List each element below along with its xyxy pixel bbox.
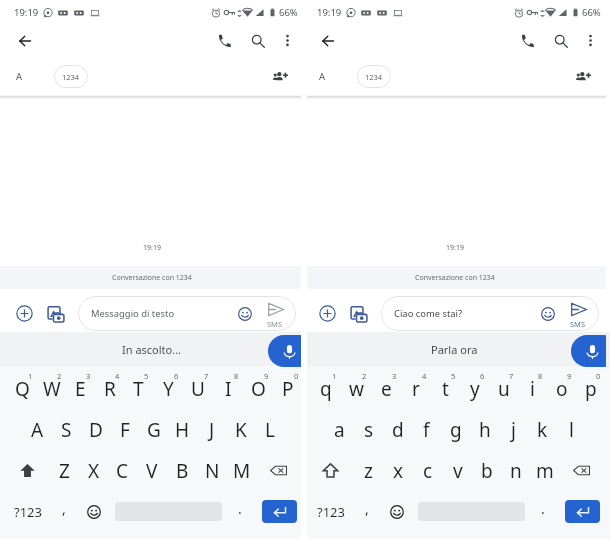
button[interactable]: B <box>167 450 197 491</box>
staticText: 1 <box>28 371 33 381</box>
button[interactable]: Emoji <box>233 302 257 326</box>
button[interactable]: T <box>124 368 153 409</box>
button[interactable]: 1234 <box>357 65 391 88</box>
button[interactable]: a <box>325 409 354 450</box>
button[interactable]: o <box>547 368 576 409</box>
button[interactable]: Enter <box>565 500 600 523</box>
button[interactable]: c <box>413 450 443 491</box>
button[interactable]: Voice input <box>268 335 316 367</box>
button[interactable]: s <box>354 409 383 450</box>
staticText: Messaggio di testo <box>91 307 175 320</box>
button[interactable]: p <box>576 368 605 409</box>
button[interactable]: A <box>22 409 52 450</box>
button[interactable]: Enter <box>262 500 297 523</box>
button[interactable]: Back <box>10 26 39 55</box>
button[interactable]: Q <box>8 368 37 409</box>
button[interactable]: S <box>52 409 81 450</box>
button[interactable]: Call <box>512 26 541 55</box>
button[interactable]: ?123 <box>311 491 351 532</box>
button[interactable]: H <box>168 409 197 450</box>
button[interactable]: w <box>341 368 371 409</box>
staticText: T <box>133 376 144 402</box>
button[interactable]: Search <box>546 26 575 55</box>
button[interactable]: q <box>311 368 341 409</box>
button[interactable]: g <box>441 409 470 450</box>
button[interactable]: f <box>412 409 441 450</box>
button[interactable]: 1234 <box>54 65 88 88</box>
button[interactable]: r <box>401 368 431 409</box>
button[interactable]: J <box>197 409 226 450</box>
button[interactable]: K <box>226 409 255 450</box>
button[interactable]: Add attachment <box>11 300 38 327</box>
button[interactable]: Backspace <box>566 455 597 486</box>
button[interactable]: Add attachment <box>314 300 341 327</box>
button[interactable]: x <box>383 450 413 491</box>
staticText: J <box>209 417 215 443</box>
button[interactable]: Y <box>153 368 183 409</box>
button[interactable]: Emoji <box>536 302 560 326</box>
button[interactable]: Ciao come stai? <box>381 296 599 331</box>
button[interactable]: y <box>460 368 489 409</box>
button[interactable]: d <box>383 409 412 450</box>
button[interactable]: m <box>530 450 559 491</box>
button[interactable]: Search <box>243 26 272 55</box>
staticText: ?123 <box>14 503 42 521</box>
button[interactable]: z <box>353 450 383 491</box>
button[interactable]: k <box>528 409 557 450</box>
button[interactable]: R <box>95 368 124 409</box>
button[interactable]: O <box>243 368 273 409</box>
button[interactable]: W <box>37 368 66 409</box>
button[interactable]: l <box>557 409 586 450</box>
button[interactable]: Voice input <box>571 335 606 367</box>
button[interactable]: Send SMS <box>562 297 594 330</box>
button[interactable]: Send SMS <box>259 297 291 330</box>
button[interactable]: X <box>79 450 108 491</box>
button[interactable]: h <box>470 409 499 450</box>
button[interactable]: e <box>371 368 401 409</box>
button[interactable]: More options <box>273 26 302 55</box>
staticText: 8 <box>234 371 239 381</box>
button[interactable]: , <box>52 491 76 532</box>
button[interactable]: More options <box>576 26 605 55</box>
button[interactable]: Call <box>209 26 238 55</box>
button[interactable]: Shift <box>315 455 346 486</box>
button[interactable]: I <box>213 368 243 409</box>
button[interactable]: , <box>355 491 379 532</box>
button[interactable]: L <box>255 409 284 450</box>
button[interactable]: i <box>518 368 547 409</box>
button[interactable]: C <box>108 450 137 491</box>
button[interactable]: . <box>531 491 555 532</box>
button[interactable]: u <box>489 368 518 409</box>
button[interactable]: Gallery <box>42 300 69 327</box>
button[interactable]: Add people <box>570 64 596 90</box>
button[interactable]: G <box>139 409 168 450</box>
button[interactable]: Add people <box>267 64 293 90</box>
button[interactable]: Emoji <box>81 491 106 532</box>
button[interactable]: Backspace <box>263 455 294 486</box>
button[interactable]: n <box>501 450 530 491</box>
button[interactable]: Emoji <box>384 491 409 532</box>
button[interactable]: M <box>227 450 257 491</box>
staticText: z <box>364 458 373 484</box>
button[interactable]: Z <box>50 450 79 491</box>
button[interactable]: D <box>81 409 110 450</box>
button[interactable]: V <box>137 450 167 491</box>
button[interactable]: ?123 <box>8 491 48 532</box>
button[interactable]: F <box>110 409 139 450</box>
button[interactable]: P <box>273 368 303 409</box>
button[interactable]: Gallery <box>345 300 372 327</box>
button[interactable]: N <box>197 450 227 491</box>
staticText: Y <box>163 376 174 402</box>
button[interactable]: b <box>472 450 501 491</box>
button[interactable]: E <box>66 368 95 409</box>
button[interactable]: . <box>228 491 252 532</box>
button[interactable]: v <box>443 450 472 491</box>
button[interactable]: j <box>499 409 528 450</box>
button[interactable]: U <box>183 368 213 409</box>
button[interactable]: Shift <box>12 455 43 486</box>
button[interactable]: t <box>431 368 460 409</box>
button[interactable]: Messaggio di testo <box>78 296 296 331</box>
button[interactable]: Back <box>313 26 342 55</box>
